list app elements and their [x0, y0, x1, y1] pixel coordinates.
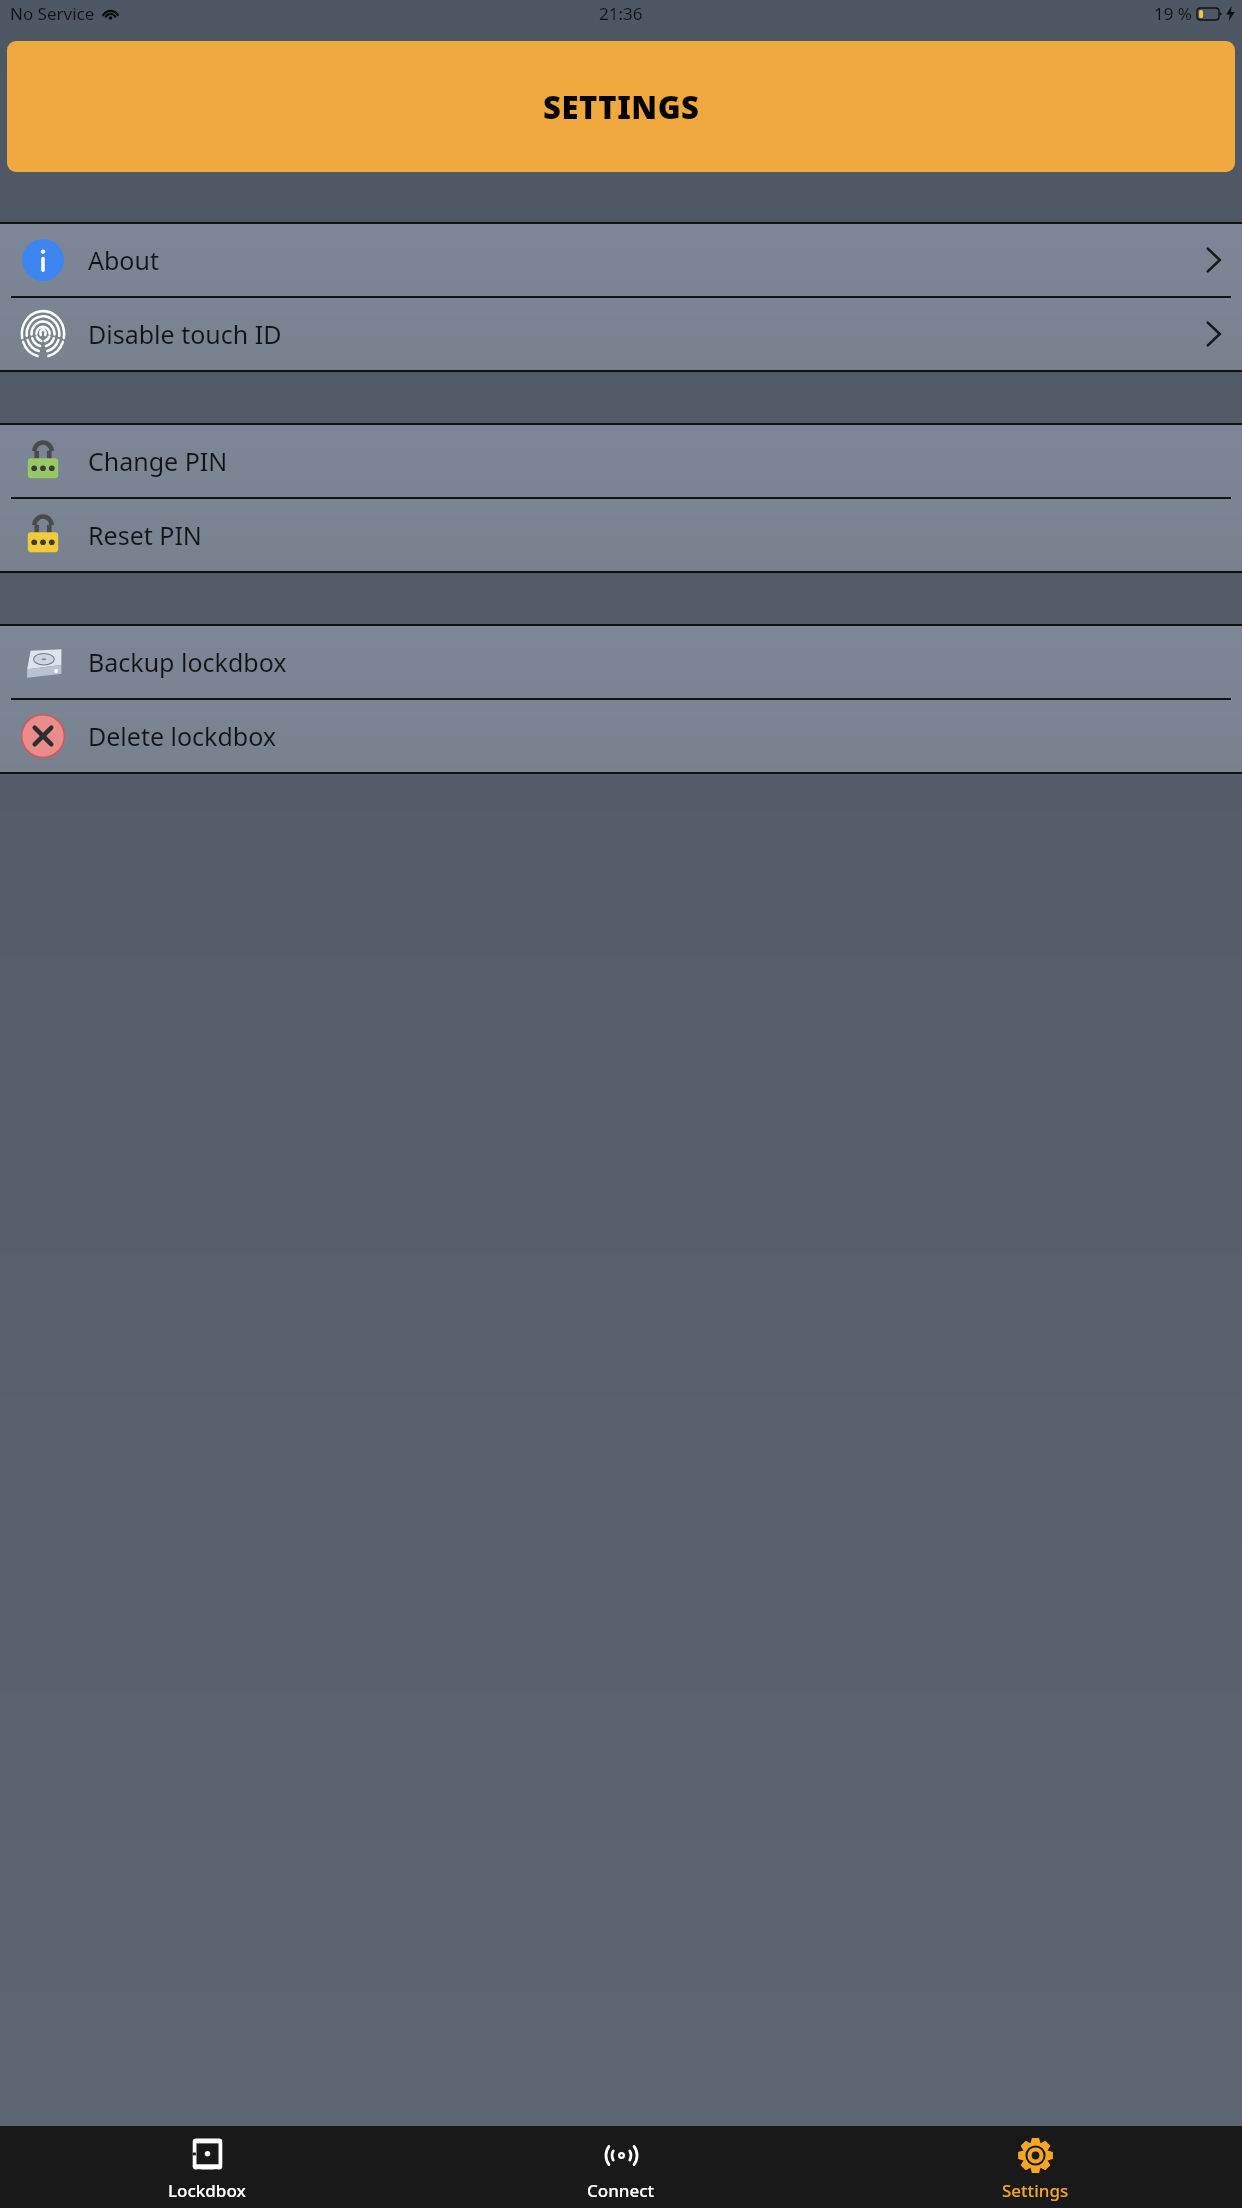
staticText: Change PIN	[88, 444, 228, 478]
button[interactable]: Connect	[414, 2126, 828, 2208]
button[interactable]: Delete lockdbox	[0, 700, 1242, 772]
staticText: Settings	[1002, 2179, 1069, 2202]
button[interactable]: Disable touch ID	[0, 298, 1242, 370]
button[interactable]: Backup lockdbox	[0, 626, 1242, 698]
staticText: Lockdbox	[168, 2179, 246, 2202]
staticText: Disable touch ID	[88, 317, 282, 351]
staticText: SETTINGS	[543, 86, 700, 128]
staticText: No Service	[10, 2, 95, 25]
button[interactable]: Settings	[828, 2126, 1242, 2208]
button[interactable]: Reset PIN	[0, 499, 1242, 571]
staticText: Connect	[587, 2179, 655, 2202]
staticText: 21:36	[599, 2, 643, 25]
button[interactable]: Change PIN	[0, 425, 1242, 497]
staticText: 19 %	[1154, 2, 1192, 25]
button[interactable]: About	[0, 224, 1242, 296]
button[interactable]: Lockdbox	[0, 2126, 414, 2208]
button[interactable]: SETTINGS	[7, 41, 1235, 172]
staticText: Reset PIN	[88, 518, 202, 552]
staticText: About	[88, 243, 159, 277]
staticText: Delete lockdbox	[88, 719, 277, 753]
staticText: Backup lockdbox	[88, 645, 287, 679]
